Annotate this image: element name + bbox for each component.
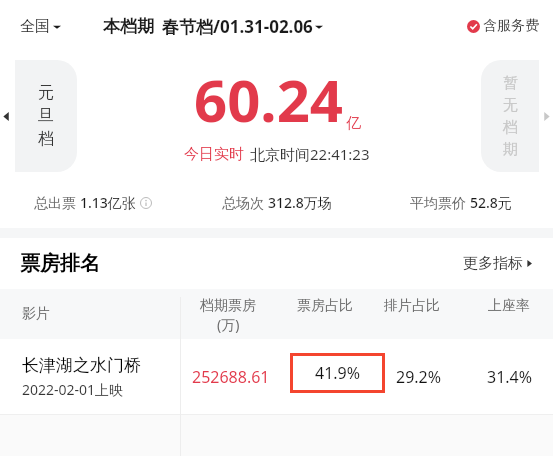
staticText: 总场次 <box>222 193 268 212</box>
button[interactable]: 更多指标 <box>463 254 533 273</box>
staticText: 31.4% <box>487 366 533 388</box>
button[interactable]: 全国 <box>14 13 67 40</box>
staticText: 平均票价 <box>410 193 470 212</box>
staticText: 亿 <box>346 114 361 133</box>
other: 说明 <box>140 197 152 209</box>
staticText: 60.24 <box>194 60 344 139</box>
staticText: 上座率 <box>488 297 530 315</box>
staticText: 全国 <box>20 17 50 36</box>
staticText: 含服务费 <box>483 17 539 35</box>
button[interactable]: 含服务费 <box>467 17 539 35</box>
staticText: (万) <box>217 315 240 334</box>
staticText: 影片 <box>22 305 50 323</box>
button[interactable]: 本档期 <box>103 15 323 38</box>
staticText: 暂 无 档 期 <box>503 74 518 159</box>
staticText: 252688.61 <box>192 366 270 388</box>
button[interactable]: 长津湖之水门桥 <box>0 339 553 414</box>
staticText: 本档期 <box>103 16 154 37</box>
staticText: 票房占比 <box>297 297 353 315</box>
staticText: 1.13亿张 <box>80 193 136 212</box>
staticText: 52.8元 <box>470 193 512 212</box>
staticText: 312.8万场 <box>268 193 332 212</box>
staticText: 排片占比 <box>384 297 440 315</box>
button[interactable]: 元旦档 <box>2 60 77 172</box>
staticText: 41.9% <box>315 362 361 384</box>
staticText: 2022-02-01上映 <box>22 380 124 399</box>
staticText: 北京时间22:41:23 <box>250 144 370 164</box>
staticText: 今日实时 <box>184 145 244 164</box>
staticText: 春节档/01.31-02.06 <box>162 15 313 38</box>
staticText: 总出票 <box>34 193 80 212</box>
staticText: 更多指标 <box>463 254 523 273</box>
staticText: 票房排名 <box>20 251 100 276</box>
staticText: 长津湖之水门桥 <box>22 355 141 376</box>
staticText: 29.2% <box>396 366 442 388</box>
button[interactable]: 暂无档期 <box>481 60 553 172</box>
staticText: 元 旦 档 <box>38 83 54 149</box>
staticText: 档期票房 <box>200 297 256 315</box>
